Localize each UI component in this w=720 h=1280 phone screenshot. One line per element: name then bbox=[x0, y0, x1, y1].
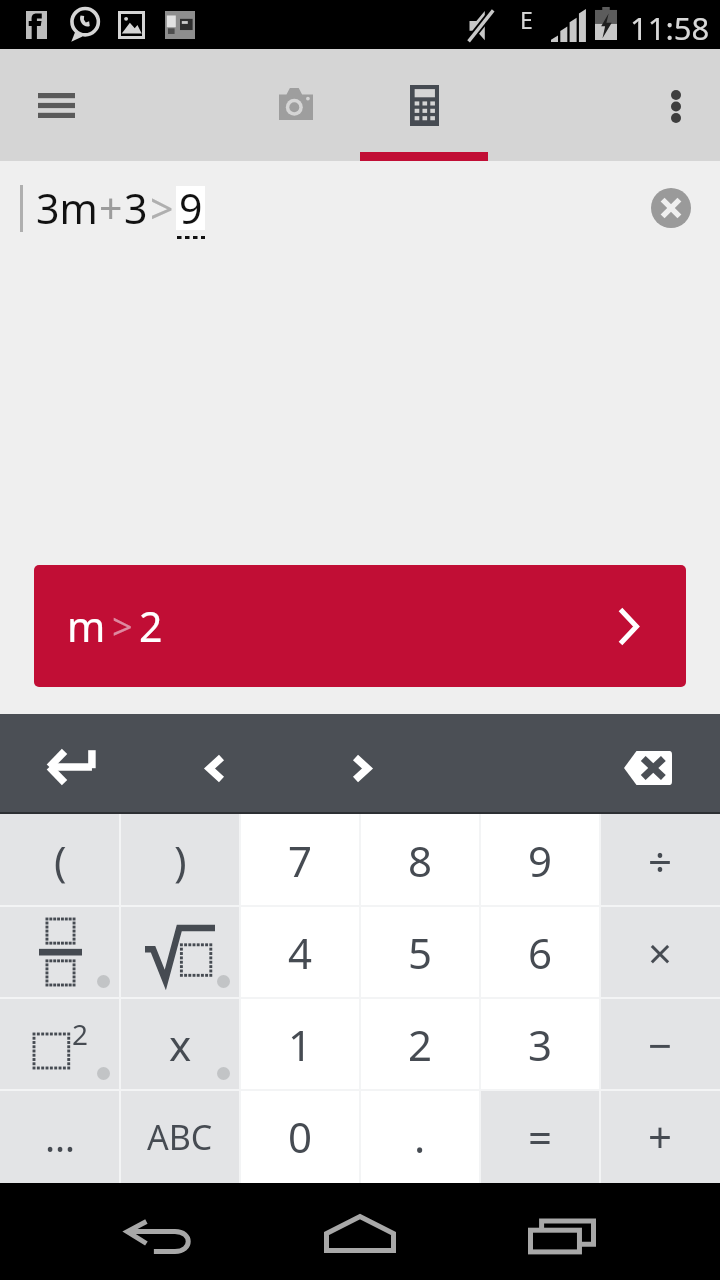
button[interactable]: Clear bbox=[639, 176, 703, 240]
staticText: 8 bbox=[408, 832, 433, 889]
button[interactable]: Enter bbox=[24, 714, 118, 814]
button[interactable]: Next bbox=[316, 718, 406, 818]
button[interactable]: × bbox=[600, 906, 720, 998]
button[interactable]: . bbox=[360, 1090, 480, 1183]
staticText: m bbox=[67, 598, 106, 654]
staticText: . bbox=[414, 1108, 426, 1165]
button[interactable]: 8 bbox=[360, 814, 480, 906]
button[interactable]: ÷ bbox=[600, 814, 720, 906]
staticText: ABC bbox=[147, 1114, 213, 1160]
button[interactable]: Previous bbox=[170, 718, 260, 818]
button[interactable] bbox=[0, 906, 120, 998]
staticText: 0 bbox=[288, 1108, 313, 1165]
button[interactable]: 3 bbox=[480, 998, 600, 1090]
button[interactable]: … bbox=[0, 1090, 120, 1183]
staticText: 3 bbox=[528, 1016, 553, 1073]
button[interactable]: 7 bbox=[240, 814, 360, 906]
button[interactable]: Home bbox=[324, 1196, 396, 1271]
button[interactable]: Recents bbox=[528, 1201, 596, 1271]
button[interactable]: Menu bbox=[0, 55, 112, 155]
button[interactable]: Backspace bbox=[601, 718, 695, 818]
staticText: ) bbox=[174, 832, 187, 889]
button[interactable]: Calculator bbox=[360, 55, 488, 155]
button[interactable]: m bbox=[34, 565, 686, 687]
button[interactable]: 4 bbox=[240, 906, 360, 998]
staticText: > bbox=[112, 602, 133, 651]
staticText: ( bbox=[54, 832, 67, 889]
button[interactable]: + bbox=[600, 1090, 720, 1183]
staticText: + bbox=[648, 1108, 673, 1165]
button[interactable]: ( bbox=[0, 814, 120, 906]
staticText: 3m bbox=[36, 180, 98, 236]
staticText: 7 bbox=[288, 832, 313, 889]
button[interactable]: 9 bbox=[480, 814, 600, 906]
staticText: > bbox=[150, 180, 174, 236]
button[interactable]: x bbox=[120, 998, 240, 1090]
staticText: 11:58 bbox=[630, 7, 710, 49]
button[interactable]: ABC bbox=[120, 1090, 240, 1183]
staticText: 5 bbox=[408, 924, 433, 981]
staticText: 9 bbox=[528, 832, 553, 889]
staticText: = bbox=[528, 1108, 553, 1165]
staticText: 2 bbox=[72, 1015, 89, 1053]
button[interactable]: 2 bbox=[0, 998, 120, 1090]
button[interactable]: Back bbox=[106, 1199, 214, 1273]
staticText: ÷ bbox=[648, 832, 673, 889]
staticText: 1 bbox=[288, 1016, 313, 1073]
staticText: … bbox=[45, 1111, 76, 1163]
button[interactable]: Camera bbox=[234, 54, 358, 154]
staticText: 2 bbox=[408, 1016, 433, 1073]
button[interactable]: − bbox=[600, 998, 720, 1090]
button[interactable]: ) bbox=[120, 814, 240, 906]
button[interactable]: 0 bbox=[240, 1090, 360, 1183]
staticText: + bbox=[99, 180, 123, 236]
button[interactable] bbox=[120, 906, 240, 998]
staticText: x bbox=[169, 1016, 192, 1073]
button[interactable]: More options bbox=[626, 56, 720, 156]
staticText: − bbox=[648, 1016, 673, 1073]
button[interactable]: 5 bbox=[360, 906, 480, 998]
staticText: 6 bbox=[528, 924, 553, 981]
button[interactable]: = bbox=[480, 1090, 600, 1183]
staticText: E bbox=[520, 4, 533, 35]
button[interactable]: 2 bbox=[360, 998, 480, 1090]
button[interactable]: 1 bbox=[240, 998, 360, 1090]
staticText: 9 bbox=[179, 180, 203, 236]
button[interactable]: 6 bbox=[480, 906, 600, 998]
staticText: 3 bbox=[124, 180, 148, 236]
staticText: 4 bbox=[288, 924, 313, 981]
staticText: × bbox=[648, 924, 673, 981]
staticText: 2 bbox=[139, 598, 163, 654]
